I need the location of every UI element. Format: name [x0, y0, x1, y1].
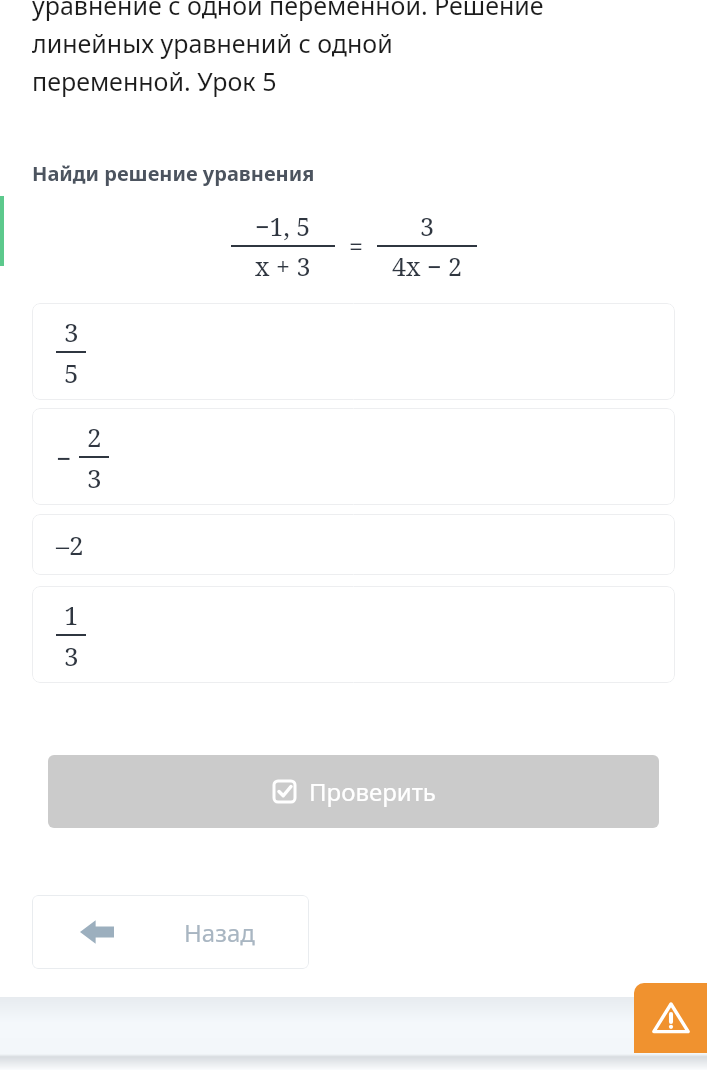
button[interactable]: –2 [32, 514, 675, 575]
staticText: 1 [64, 597, 79, 632]
staticText: 3 [87, 460, 102, 495]
button[interactable]: − [32, 408, 675, 505]
staticText: x + 3 [255, 249, 311, 283]
staticText: 4x − 2 [392, 249, 462, 283]
staticText: Назад [184, 916, 255, 949]
button[interactable]: Назад [32, 895, 309, 969]
staticText: 2 [87, 419, 102, 454]
staticText: –2 [56, 527, 84, 562]
button[interactable]: 3 [32, 303, 675, 400]
staticText: − [56, 440, 72, 475]
staticText: 3 [64, 638, 79, 673]
staticText: Проверить [309, 775, 436, 808]
button[interactable]: Пожаловаться [634, 983, 707, 1053]
staticText: −1, 5 [255, 209, 311, 243]
staticText: = [349, 229, 363, 263]
staticText: уравнение с одной переменной. Решение ли… [32, 0, 544, 98]
staticText: Найди решение уравнения [32, 160, 315, 187]
button[interactable]: 1 [32, 586, 675, 683]
staticText: 3 [64, 314, 79, 349]
staticText: 5 [64, 355, 79, 390]
button[interactable]: Проверить [48, 755, 659, 828]
staticText: 3 [420, 209, 434, 243]
